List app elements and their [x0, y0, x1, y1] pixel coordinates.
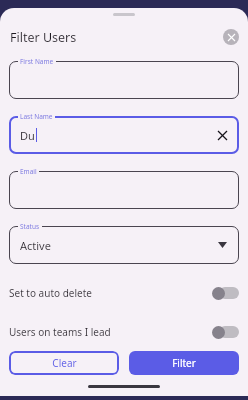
button[interactable]: First Name: [9, 55, 239, 99]
staticText: Filter Users: [10, 29, 77, 46]
button[interactable]: Clear text: [213, 126, 231, 144]
staticText: Set to auto delete: [9, 286, 92, 300]
staticText: Status: [20, 222, 40, 231]
staticText: Filter: [172, 356, 196, 370]
button[interactable]: Users on teams I lead: [9, 317, 239, 347]
staticText: Users on teams I lead: [9, 325, 111, 339]
staticText: Du: [20, 128, 35, 143]
button[interactable]: Email: [9, 165, 239, 209]
button[interactable]: Set to auto delete: [9, 278, 239, 308]
button[interactable]: Status: [9, 220, 239, 264]
button[interactable]: Clear: [9, 351, 119, 375]
staticText: First Name: [20, 57, 54, 66]
button[interactable]: Filter: [129, 351, 239, 375]
staticText: Last Name: [20, 112, 53, 121]
button[interactable]: Close: [223, 29, 239, 45]
button[interactable]: Last Name: [9, 110, 239, 154]
staticText: Email: [20, 167, 37, 176]
staticText: Clear: [52, 356, 77, 370]
button[interactable]: Open status dropdown: [213, 236, 231, 254]
staticText: Active: [20, 238, 51, 253]
